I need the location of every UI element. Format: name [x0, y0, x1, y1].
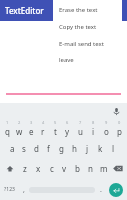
button[interactable]: x — [32, 158, 45, 179]
button[interactable]: s — [18, 138, 30, 158]
button[interactable]: j — [81, 138, 94, 158]
button[interactable]: c — [45, 158, 58, 179]
staticText: Copy the text — [59, 23, 97, 31]
button[interactable]: E-mail send text — [53, 35, 122, 52]
button[interactable]: Erase the text — [53, 1, 122, 18]
staticText: 0 — [118, 120, 121, 125]
staticText: 2 — [18, 120, 21, 125]
button[interactable]: l — [107, 138, 120, 158]
button[interactable]: Backspace — [110, 158, 126, 179]
staticText: 8 — [92, 120, 95, 125]
button[interactable]: . — [95, 179, 106, 200]
staticText: v — [62, 163, 67, 174]
staticText: x — [36, 163, 41, 174]
staticText: z — [23, 163, 27, 174]
staticText: y — [65, 126, 70, 137]
staticText: leave — [59, 56, 74, 64]
button[interactable]: Space — [29, 182, 95, 197]
button[interactable]: 1 — [1, 118, 13, 138]
button[interactable]: 5 — [49, 118, 61, 138]
staticText: . — [100, 185, 102, 195]
staticText: d — [34, 143, 39, 154]
button[interactable]: 4 — [37, 118, 49, 138]
staticText: n — [88, 163, 93, 174]
button[interactable]: z — [18, 158, 32, 179]
staticText: q — [5, 126, 10, 137]
staticText: g — [59, 143, 64, 154]
staticText: 1 — [6, 120, 9, 125]
staticText: 3 — [30, 120, 33, 125]
button[interactable]: leave — [53, 52, 122, 68]
staticText: 7 — [79, 120, 82, 125]
staticText: b — [75, 163, 80, 174]
button[interactable]: 7 — [74, 118, 87, 138]
button[interactable]: Voice input — [110, 105, 122, 117]
button[interactable]: a — [6, 138, 18, 158]
staticText: ?123 — [4, 186, 15, 193]
staticText: s — [22, 143, 26, 154]
staticText: E-mail send text — [59, 40, 104, 48]
button[interactable]: d — [30, 138, 42, 158]
button[interactable]: 3 — [25, 118, 37, 138]
button[interactable]: 2 — [13, 118, 25, 138]
staticText: a — [10, 143, 15, 154]
button[interactable]: n — [84, 158, 97, 179]
button[interactable]: h — [68, 138, 81, 158]
staticText: c — [50, 163, 54, 174]
staticText: TextEditor — [5, 5, 44, 16]
staticText: t — [54, 126, 57, 137]
button[interactable]: 8 — [87, 118, 100, 138]
button[interactable]: 9 — [100, 118, 113, 138]
staticText: e — [29, 126, 34, 137]
staticText: h — [72, 143, 77, 154]
button[interactable]: Enter — [106, 179, 126, 200]
staticText: p — [117, 126, 122, 137]
button[interactable]: , — [18, 179, 29, 200]
staticText: 5 — [54, 120, 57, 125]
button[interactable]: k — [94, 138, 107, 158]
staticText: 9 — [105, 120, 108, 125]
staticText: w — [16, 126, 23, 137]
staticText: Erase the text — [59, 6, 98, 14]
staticText: 6 — [66, 120, 69, 125]
button[interactable]: m — [97, 158, 110, 179]
staticText: l — [112, 143, 115, 154]
staticText: k — [98, 143, 103, 154]
staticText: j — [86, 143, 89, 154]
button[interactable]: 6 — [61, 118, 74, 138]
button[interactable]: g — [55, 138, 68, 158]
staticText: o — [104, 126, 109, 137]
button[interactable]: Shift — [1, 158, 18, 179]
staticText: m — [100, 163, 108, 174]
staticText: r — [41, 126, 45, 137]
button[interactable]: ?123 — [1, 179, 18, 200]
button[interactable]: v — [58, 158, 71, 179]
staticText: i — [92, 126, 95, 137]
staticText: 4 — [42, 120, 45, 125]
button[interactable]: Copy the text — [53, 18, 122, 35]
button[interactable]: b — [71, 158, 84, 179]
staticText: , — [23, 185, 25, 195]
staticText: f — [47, 143, 50, 154]
button[interactable]: f — [42, 138, 55, 158]
button[interactable]: 0 — [113, 118, 126, 138]
staticText: u — [78, 126, 83, 137]
